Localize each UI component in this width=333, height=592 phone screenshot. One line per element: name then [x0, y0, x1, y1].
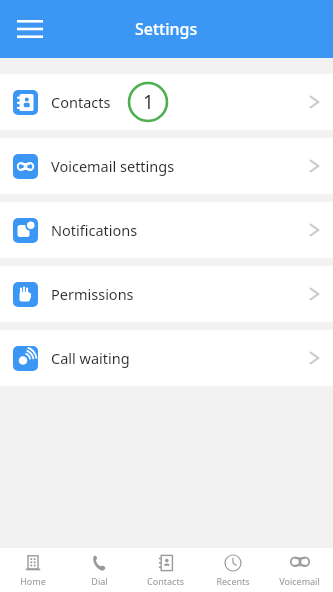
button[interactable]: Contacts — [132, 548, 199, 592]
staticText: Home — [20, 575, 46, 587]
button[interactable]: Voicemail — [266, 548, 333, 592]
button[interactable]: Contacts — [0, 74, 333, 130]
button[interactable]: Call waiting — [0, 330, 333, 386]
button[interactable]: Permissions — [0, 266, 333, 322]
staticText: Permissions — [51, 284, 134, 304]
button[interactable]: Recents — [199, 548, 266, 592]
button[interactable]: Home — [0, 548, 66, 592]
staticText: Settings — [135, 18, 198, 40]
staticText: Voicemail settings — [51, 156, 175, 176]
staticText: Call waiting — [51, 348, 130, 368]
staticText: Recents — [216, 575, 250, 587]
button[interactable]: Open navigation menu — [8, 7, 52, 51]
staticText: 1 — [143, 89, 154, 115]
button[interactable]: Dial — [66, 548, 132, 592]
button[interactable]: Voicemail settings — [0, 138, 333, 194]
staticText: Dial — [91, 575, 108, 587]
button[interactable]: Notifications — [0, 202, 333, 258]
staticText: Contacts — [51, 92, 111, 112]
staticText: Notifications — [51, 220, 138, 240]
staticText: Contacts — [147, 575, 184, 587]
staticText: Voicemail — [279, 575, 320, 587]
